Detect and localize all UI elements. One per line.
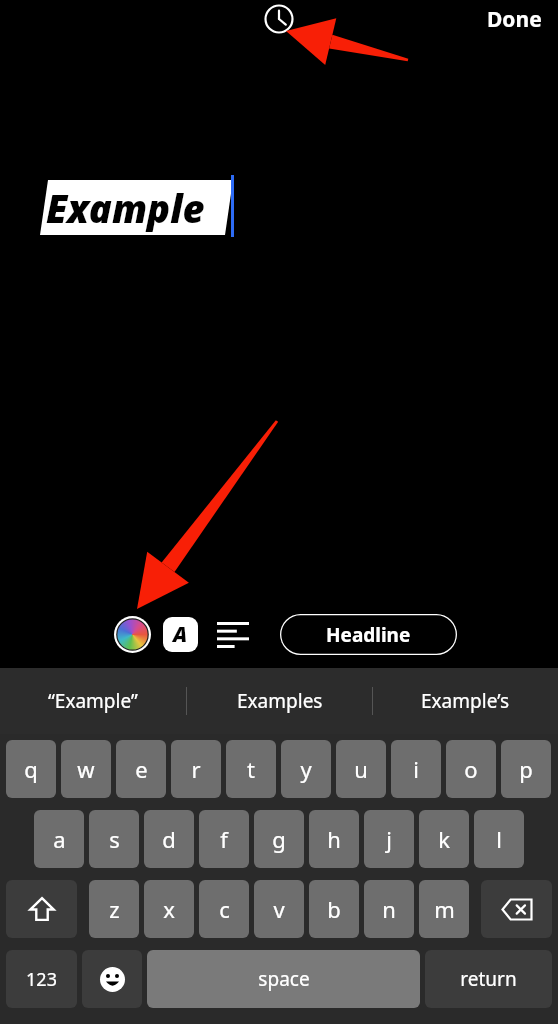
button[interactable]: n bbox=[364, 880, 414, 938]
button[interactable]: l bbox=[474, 810, 524, 868]
button[interactable]: s bbox=[89, 810, 139, 868]
button[interactable]: Timing bbox=[261, 1, 297, 37]
button[interactable]: u bbox=[336, 740, 386, 798]
button[interactable]: p bbox=[501, 740, 551, 798]
button[interactable]: Font style bbox=[163, 617, 198, 652]
staticText: r bbox=[191, 754, 201, 784]
button[interactable]: Examples bbox=[187, 668, 372, 734]
button[interactable]: Backspace bbox=[481, 880, 552, 938]
staticText: n bbox=[382, 894, 396, 924]
button[interactable]: Emoji bbox=[82, 950, 142, 1008]
staticText: Examples bbox=[237, 688, 323, 714]
staticText: h bbox=[327, 824, 341, 854]
button[interactable]: Alignment bbox=[212, 615, 254, 655]
staticText: u bbox=[354, 754, 368, 784]
staticText: f bbox=[220, 824, 228, 854]
staticText: y bbox=[300, 754, 312, 784]
button[interactable]: x bbox=[144, 880, 194, 938]
staticText: b bbox=[327, 894, 341, 924]
button[interactable]: h bbox=[309, 810, 359, 868]
staticText: g bbox=[272, 824, 286, 854]
button[interactable]: z bbox=[89, 880, 139, 938]
staticText: Example’s bbox=[421, 688, 510, 714]
staticText: m bbox=[434, 894, 455, 924]
button[interactable]: q bbox=[6, 740, 56, 798]
button[interactable]: m bbox=[419, 880, 469, 938]
staticText: Headline bbox=[326, 622, 411, 648]
staticText: p bbox=[519, 754, 533, 784]
staticText: o bbox=[464, 754, 478, 784]
button[interactable]: a bbox=[34, 810, 84, 868]
staticText: return bbox=[460, 966, 517, 992]
staticText: Example bbox=[46, 182, 205, 234]
staticText: x bbox=[163, 894, 175, 924]
button[interactable]: j bbox=[364, 810, 414, 868]
staticText: q bbox=[24, 754, 38, 784]
staticText: e bbox=[135, 754, 148, 784]
staticText: a bbox=[53, 824, 66, 854]
button[interactable]: g bbox=[254, 810, 304, 868]
button[interactable]: y bbox=[281, 740, 331, 798]
button[interactable]: “Example” bbox=[0, 668, 186, 734]
button[interactable]: f bbox=[199, 810, 249, 868]
button[interactable]: return bbox=[425, 950, 552, 1008]
staticText: j bbox=[386, 824, 392, 854]
button[interactable]: d bbox=[144, 810, 194, 868]
button[interactable]: k bbox=[419, 810, 469, 868]
staticText: l bbox=[496, 824, 502, 854]
button[interactable]: t bbox=[226, 740, 276, 798]
staticText: space bbox=[258, 966, 310, 992]
button[interactable]: Shift bbox=[6, 880, 77, 938]
staticText: i bbox=[413, 754, 419, 784]
button[interactable]: 123 bbox=[6, 950, 77, 1008]
button[interactable]: c bbox=[199, 880, 249, 938]
staticText: d bbox=[162, 824, 176, 854]
staticText: z bbox=[109, 894, 120, 924]
button[interactable]: o bbox=[446, 740, 496, 798]
staticText: A bbox=[173, 620, 188, 649]
button[interactable]: b bbox=[309, 880, 359, 938]
staticText: s bbox=[109, 824, 120, 854]
button[interactable]: Headline bbox=[280, 614, 457, 655]
button[interactable]: Done bbox=[478, 2, 550, 36]
staticText: k bbox=[438, 824, 450, 854]
staticText: Done bbox=[487, 5, 542, 34]
button[interactable]: r bbox=[171, 740, 221, 798]
staticText: t bbox=[247, 754, 255, 784]
button[interactable]: i bbox=[391, 740, 441, 798]
button[interactable]: Example bbox=[38, 178, 238, 236]
button[interactable]: Example’s bbox=[373, 668, 558, 734]
button[interactable]: e bbox=[116, 740, 166, 798]
button[interactable]: v bbox=[254, 880, 304, 938]
staticText: 123 bbox=[26, 967, 57, 992]
button[interactable]: space bbox=[147, 950, 420, 1008]
button[interactable]: w bbox=[61, 740, 111, 798]
staticText: c bbox=[219, 894, 230, 924]
button[interactable]: Text color bbox=[114, 616, 151, 653]
staticText: w bbox=[77, 754, 95, 784]
staticText: v bbox=[273, 894, 285, 924]
staticText: “Example” bbox=[48, 688, 138, 714]
